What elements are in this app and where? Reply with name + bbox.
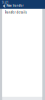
- staticText: Transfer details: [4, 11, 26, 14]
- staticText: 9:41: [2, 1, 9, 4]
- staticText: New Transfer: [6, 4, 23, 7]
